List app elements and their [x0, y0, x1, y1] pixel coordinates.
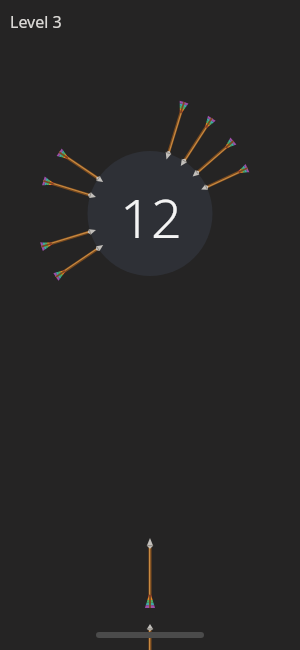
staticText: Level 3 [10, 11, 62, 33]
staticText: 12 [120, 180, 182, 254]
button[interactable]: Shoot arrow [0, 0, 300, 650]
